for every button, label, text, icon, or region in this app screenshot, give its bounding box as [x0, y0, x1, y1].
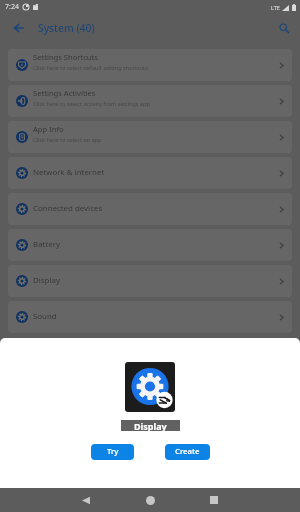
button[interactable]: Try	[91, 444, 134, 460]
staticText: Network & internet	[33, 167, 278, 178]
staticText: Settings Shortcuts	[33, 52, 98, 62]
button[interactable]: Search	[274, 18, 294, 38]
staticText: Display	[134, 420, 167, 431]
staticText: Try	[107, 446, 119, 457]
button[interactable]: Home	[138, 488, 162, 512]
button[interactable]: Recents	[202, 488, 226, 512]
button[interactable]: Create	[165, 444, 210, 460]
button[interactable]: Network & internet	[8, 157, 292, 189]
staticText: 7:24	[5, 2, 19, 12]
staticText: Battery	[33, 239, 278, 250]
staticText: App Info	[33, 124, 64, 134]
button[interactable]: Settings Shortcuts	[8, 49, 292, 81]
staticText: Sound	[33, 311, 278, 322]
staticText: Click here to select activity from setti…	[33, 100, 150, 108]
button[interactable]: Sound	[8, 301, 292, 333]
staticText: Settings Activities	[33, 88, 96, 98]
staticText: Connected devices	[33, 203, 278, 214]
staticText: Display	[33, 275, 278, 286]
button[interactable]: App Info	[8, 121, 292, 153]
button[interactable]: Settings Activities	[8, 85, 292, 117]
button[interactable]: Battery	[8, 229, 292, 261]
staticText: Create	[175, 446, 200, 457]
staticText: LTE	[271, 4, 280, 11]
button[interactable]: Back	[74, 488, 98, 512]
button[interactable]: Connected devices	[8, 193, 292, 225]
button[interactable]: Back	[8, 18, 28, 38]
button[interactable]: Display	[8, 265, 292, 297]
staticText: System (40)	[38, 21, 95, 35]
staticText: Click here to select default setting sho…	[33, 64, 148, 72]
staticText: Click here to select an app	[33, 136, 102, 144]
